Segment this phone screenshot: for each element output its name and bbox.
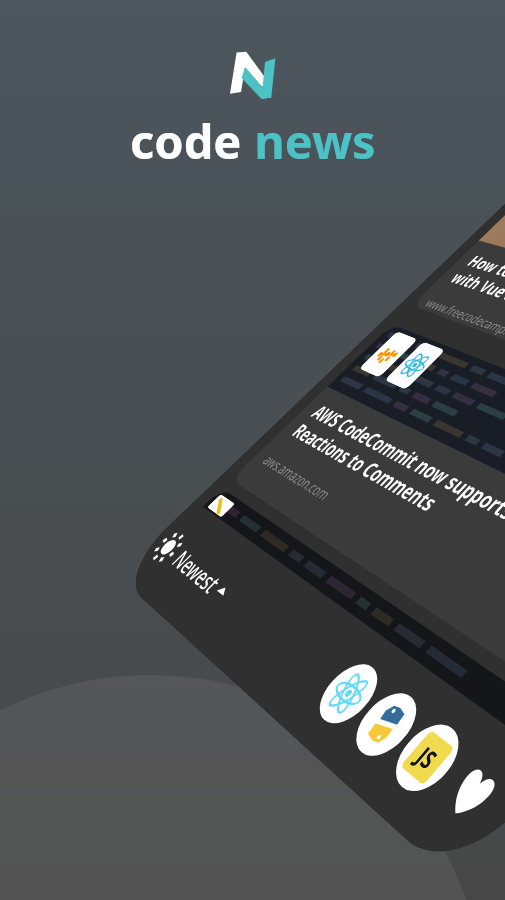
staticText: code	[130, 109, 242, 173]
button[interactable]: How to build a Blog with Vue and Markdow…	[22, 700, 505, 900]
staticText: news	[242, 109, 376, 173]
